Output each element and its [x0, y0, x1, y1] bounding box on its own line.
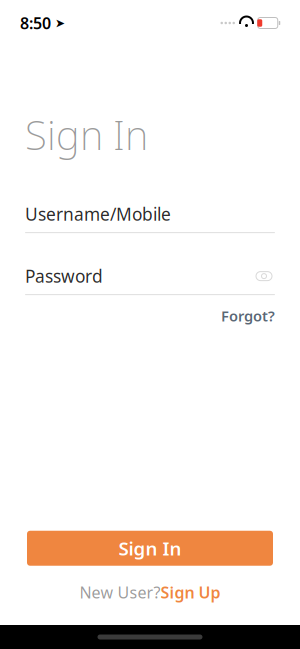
staticText: Forgot?	[221, 306, 275, 326]
staticText: Password	[25, 265, 103, 288]
staticText: Sign In	[25, 108, 148, 161]
button[interactable]: Forgot?	[221, 306, 275, 326]
button[interactable]: New User?	[79, 582, 220, 603]
staticText: Sign Up	[160, 582, 220, 603]
staticText: 8:50	[20, 12, 51, 34]
button[interactable]: Show password	[253, 266, 275, 286]
staticText: ➤	[51, 16, 65, 30]
staticText: Username/Mobile	[25, 203, 171, 226]
staticText: New User?	[79, 582, 160, 603]
staticText: Sign In	[118, 536, 181, 561]
button[interactable]: Sign In	[27, 531, 273, 566]
